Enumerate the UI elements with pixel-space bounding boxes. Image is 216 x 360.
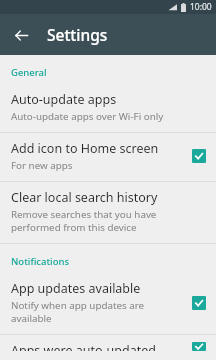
staticText: Apps were auto-updated — [11, 342, 156, 351]
staticText: App updates available — [11, 280, 141, 297]
button[interactable]: App updates available — [0, 273, 216, 334]
staticText: General — [11, 66, 47, 79]
button[interactable]: Add icon to Home screen — [0, 133, 216, 181]
staticText: Add icon to Home screen — [11, 140, 159, 157]
button[interactable]: Apps were auto-updated — [0, 335, 216, 360]
staticText: Auto-update apps over Wi-Fi only — [11, 110, 164, 123]
staticText: Auto-update apps — [11, 91, 117, 108]
staticText: For new apps — [11, 159, 73, 172]
staticText: Clear local search history — [11, 189, 158, 206]
button[interactable]: Auto-update apps — [0, 84, 216, 132]
button[interactable]: Back — [6, 20, 36, 50]
staticText: Settings — [47, 24, 108, 45]
staticText: Notifications — [11, 255, 70, 268]
staticText: Remove searches that you have performed … — [11, 208, 206, 234]
staticText: 10:00 — [190, 1, 212, 13]
staticText: Notify when app updates are available — [11, 299, 184, 325]
button[interactable]: Clear local search history — [0, 182, 216, 243]
